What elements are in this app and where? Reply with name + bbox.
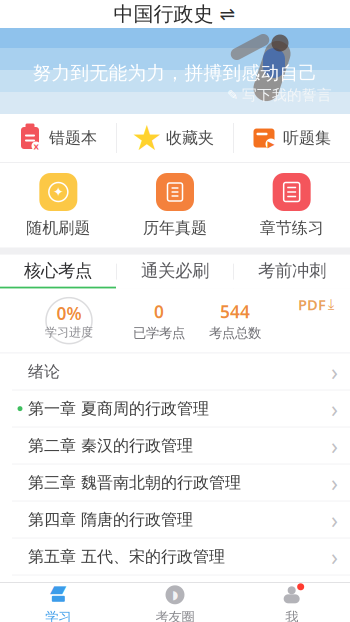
button[interactable]: ◗ [117,580,233,622]
staticText: 考点总数 [209,325,261,341]
button[interactable]: 第六章 辽金元的行政管理 [0,576,350,613]
staticText: 第三章 魏晋南北朝的行政管理 [28,473,241,492]
button[interactable]: 核心考点 [0,255,116,289]
staticText: › [331,357,338,387]
staticText: 第四章 隋唐的行政管理 [28,510,193,529]
staticText: 考前冲刺 [258,260,326,281]
staticText: ⇌ [219,3,235,25]
staticText: 第一章 夏商周的行政管理 [28,399,209,418]
button[interactable]: 第五章 五代、宋的行政管理 [0,539,350,576]
staticText: ⤓ [328,297,334,312]
button[interactable]: 第三章 魏晋南北朝的行政管理 [0,465,350,502]
staticText: 第六章 辽金元的行政管理 [28,584,209,603]
staticText: 学习 [45,609,71,622]
staticText: 随机刷题 [26,218,90,238]
button[interactable]: x [0,114,116,162]
staticText: ✎ [227,87,238,102]
button[interactable]: ▰ [0,580,117,622]
button[interactable]: 第七章 明朝的行政管理 [0,613,350,622]
staticText: › [331,431,338,461]
staticText: 通关必刷 [141,260,209,281]
button[interactable]: 通关必刷 [117,255,233,289]
staticText: 第二章 秦汉的行政管理 [28,436,193,455]
staticText: 收藏夹 [166,128,214,148]
staticText: ✦ [53,184,64,199]
staticText: › [331,579,338,609]
button[interactable]: ✎ [223,84,336,106]
staticText: PDF [298,295,326,314]
staticText: 中国行政史 [113,2,213,26]
button[interactable]: 章节练习 [233,173,350,238]
staticText: 544 [220,300,250,323]
staticText: 0 [154,300,164,323]
button[interactable]: ▶ [234,114,350,162]
staticText: › [331,468,338,498]
staticText: 0% [56,302,81,325]
staticText: 努力到无能为力，拼搏到感动自己 [32,61,317,84]
button[interactable]: 第一章 夏商周的行政管理 [0,391,350,428]
button[interactable]: 历年真题 [117,173,233,238]
staticText: 章节练习 [260,218,324,238]
staticText: 历年真题 [143,218,207,238]
staticText: › [331,542,338,572]
button[interactable]: ★ [117,114,233,162]
staticText: 听题集 [283,128,331,148]
staticText: ◗ [172,588,178,602]
staticText: 错题本 [49,128,97,148]
staticText: 考友圈 [155,609,194,622]
button[interactable]: 绪论 [0,354,350,391]
staticText: ▶ [267,139,274,149]
staticText: 第七章 明朝的行政管理 [28,621,193,622]
staticText: › [331,505,338,535]
button[interactable]: 切换科目 [218,5,236,23]
staticText: 核心考点 [24,260,92,281]
button[interactable]: PDF [292,292,340,317]
staticText: x [33,140,38,152]
button[interactable]: 考前冲刺 [234,255,350,289]
button[interactable]: 我 [233,580,350,622]
staticText: 我 [285,609,298,622]
button[interactable]: ✦ [0,173,117,238]
staticText: › [331,394,338,424]
staticText: 已学考点 [133,325,185,341]
staticText: 第五章 五代、宋的行政管理 [28,547,225,566]
staticText: 学习进度 [45,325,93,339]
staticText: ★ [131,118,162,158]
staticText: 绪论 [28,362,60,381]
staticText: 写下我的誓言 [242,86,332,104]
button[interactable]: 第二章 秦汉的行政管理 [0,428,350,465]
button[interactable]: 第四章 隋唐的行政管理 [0,502,350,539]
staticText: ▰ [50,580,66,604]
